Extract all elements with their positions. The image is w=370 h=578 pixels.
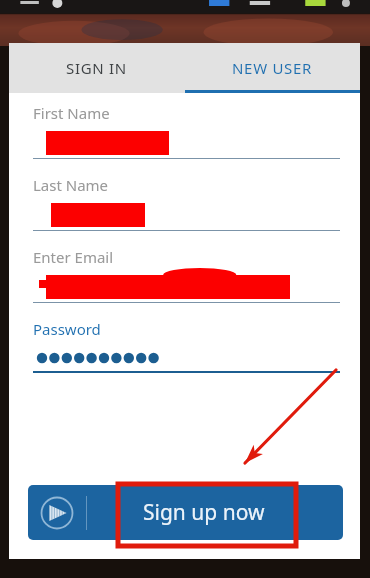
button[interactable]: NEW USER [184, 43, 360, 93]
staticText: Enter Email [33, 247, 114, 267]
staticText: Sign up now [143, 498, 265, 527]
staticText: Last Name [33, 175, 109, 195]
staticText: Password [33, 319, 101, 339]
staticText: First Name [33, 103, 110, 123]
staticText: NEW USER [232, 58, 313, 78]
staticText: SIGN IN [66, 58, 127, 78]
button[interactable]: SIGN IN [9, 43, 184, 93]
button[interactable]: Sign up now [28, 485, 343, 540]
